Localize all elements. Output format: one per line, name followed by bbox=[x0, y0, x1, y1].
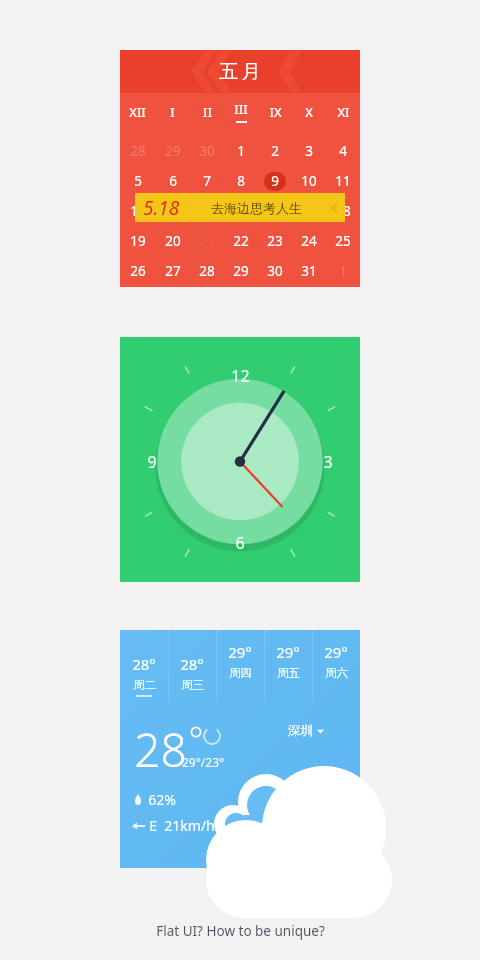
button[interactable]: 5.18 bbox=[135, 193, 345, 222]
staticText: 31 bbox=[301, 262, 317, 280]
staticText: 28 bbox=[134, 718, 187, 781]
button[interactable]: 29° bbox=[216, 630, 264, 702]
button[interactable]: 8 bbox=[224, 166, 258, 196]
staticText: 29° bbox=[324, 642, 348, 662]
button[interactable]: 4 bbox=[326, 136, 360, 166]
button[interactable]: 28° bbox=[120, 630, 168, 702]
staticText: 五月 bbox=[218, 60, 262, 84]
staticText: 30 bbox=[199, 142, 215, 160]
staticText: II bbox=[203, 104, 212, 121]
button[interactable]: 6 bbox=[155, 166, 190, 196]
staticText: 25 bbox=[335, 232, 351, 250]
staticText: 28° bbox=[132, 654, 156, 674]
staticText: 16 bbox=[267, 202, 283, 220]
staticText: 13 bbox=[165, 202, 181, 220]
staticText: Flat UI? How to be unique? bbox=[156, 922, 325, 940]
staticText: 28° bbox=[180, 654, 204, 674]
staticText: 3 bbox=[305, 142, 313, 160]
staticText: IX bbox=[269, 104, 282, 121]
button[interactable]: 3 bbox=[292, 136, 326, 166]
button[interactable]: 5 bbox=[120, 166, 155, 196]
button[interactable]: 29 bbox=[224, 256, 258, 286]
staticText: 8 bbox=[237, 172, 245, 190]
staticText: III bbox=[234, 101, 248, 118]
button[interactable]: 9 bbox=[258, 166, 292, 196]
button[interactable]: Dismiss bbox=[326, 201, 340, 215]
button[interactable]: Refresh bbox=[202, 726, 222, 746]
button[interactable]: 14 bbox=[190, 196, 224, 226]
button[interactable]: 24 bbox=[292, 226, 326, 256]
staticText: 1 bbox=[237, 142, 245, 160]
staticText: 去海边思考人生 bbox=[211, 200, 302, 216]
staticText: 12 bbox=[130, 202, 146, 220]
staticText: XII bbox=[129, 104, 146, 121]
staticText: 62% bbox=[148, 790, 176, 809]
button[interactable]: 29° bbox=[264, 630, 312, 702]
button[interactable]: 15 bbox=[224, 196, 258, 226]
staticText: 6 bbox=[235, 532, 245, 554]
staticText: 18 bbox=[335, 202, 351, 220]
staticText: 4 bbox=[339, 142, 347, 160]
button[interactable]: 深圳 bbox=[288, 723, 324, 739]
button[interactable]: 25 bbox=[326, 226, 360, 256]
staticText: XI bbox=[337, 104, 350, 121]
staticText: X bbox=[305, 104, 313, 121]
button[interactable]: 30 bbox=[258, 256, 292, 286]
button[interactable]: 1 bbox=[326, 256, 360, 286]
staticText: 29 bbox=[233, 262, 249, 280]
staticText: 11 bbox=[335, 172, 351, 190]
button[interactable]: 30 bbox=[190, 136, 224, 166]
button[interactable]: 1 bbox=[224, 136, 258, 166]
button[interactable]: 28° bbox=[120, 630, 360, 868]
button[interactable]: 31 bbox=[292, 256, 326, 286]
button[interactable]: 18 bbox=[326, 196, 360, 226]
button[interactable]: 12 bbox=[120, 337, 360, 582]
staticText: 周五 bbox=[277, 666, 300, 680]
button[interactable]: 7 bbox=[190, 166, 224, 196]
staticText: 20 bbox=[165, 232, 181, 250]
staticText: 15 bbox=[233, 202, 249, 220]
staticText: 12 bbox=[231, 365, 250, 387]
button[interactable]: 13 bbox=[155, 196, 190, 226]
staticText: 30 bbox=[267, 262, 283, 280]
button[interactable]: 五月 bbox=[120, 50, 360, 93]
staticText: 28 bbox=[199, 262, 215, 280]
button[interactable]: 20 bbox=[155, 226, 190, 256]
button[interactable]: 10 bbox=[292, 166, 326, 196]
button[interactable]: 28 bbox=[120, 136, 155, 166]
staticText: 29°/23° bbox=[182, 754, 225, 770]
button[interactable]: 28° bbox=[168, 630, 216, 702]
staticText: 22 bbox=[233, 232, 249, 250]
staticText: 29 bbox=[165, 142, 181, 160]
button[interactable]: 23 bbox=[258, 226, 292, 256]
staticText: 23 bbox=[267, 232, 283, 250]
staticText: 27 bbox=[165, 262, 181, 280]
button[interactable]: 12 bbox=[120, 196, 155, 226]
button[interactable]: 26 bbox=[120, 256, 155, 286]
staticText: 深圳 bbox=[288, 723, 313, 739]
staticText: 2 bbox=[271, 142, 279, 160]
staticText: 19 bbox=[130, 232, 146, 250]
button[interactable]: 19 bbox=[120, 226, 155, 256]
staticText: 周四 bbox=[229, 666, 252, 680]
button[interactable]: 17 bbox=[292, 196, 326, 226]
button[interactable]: 27 bbox=[155, 256, 190, 286]
staticText: 3 bbox=[323, 451, 333, 473]
button[interactable]: 2 bbox=[258, 136, 292, 166]
button[interactable]: 29 bbox=[155, 136, 190, 166]
staticText: 9 bbox=[271, 172, 279, 190]
button[interactable]: 16 bbox=[258, 196, 292, 226]
button[interactable]: 28 bbox=[190, 256, 224, 286]
staticText: 26 bbox=[130, 262, 146, 280]
button[interactable]: 11 bbox=[326, 166, 360, 196]
staticText: 28 bbox=[130, 142, 146, 160]
button[interactable]: 22 bbox=[224, 226, 258, 256]
button[interactable]: 29° bbox=[312, 630, 360, 702]
staticText: 5.18 bbox=[143, 195, 180, 221]
staticText: 21 bbox=[199, 232, 215, 250]
staticText: 14 bbox=[199, 202, 215, 220]
staticText: 6 bbox=[169, 172, 177, 190]
staticText: 周六 bbox=[325, 666, 348, 680]
